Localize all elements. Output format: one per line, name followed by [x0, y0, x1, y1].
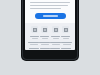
button[interactable]: Shortcut 1: [31, 26, 38, 33]
button[interactable]: Shortcut 2: [41, 26, 48, 33]
button[interactable]: Shortcut 3: [52, 26, 59, 33]
button[interactable]: Shortcut 4: [62, 26, 69, 33]
button[interactable]: Primary action: [35, 13, 66, 19]
